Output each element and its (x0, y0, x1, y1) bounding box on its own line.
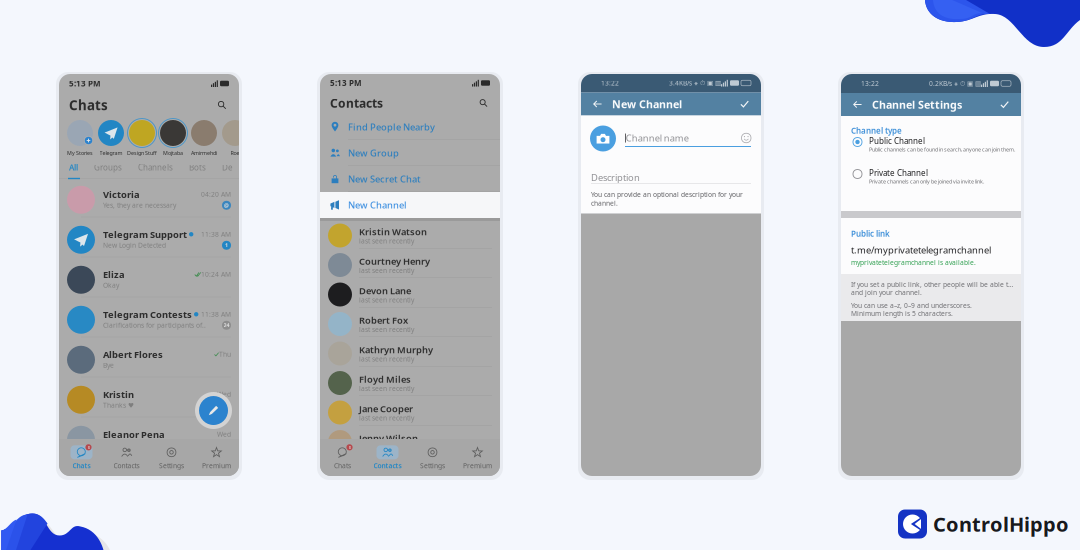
staticText: Description (591, 171, 640, 183)
staticText: Kristin (103, 388, 134, 400)
staticText: Find People Nearby (348, 121, 435, 133)
staticText: Telegram Support (103, 228, 187, 240)
staticText: 13:22 (861, 79, 879, 88)
button[interactable]: Albert Flores (59, 340, 239, 380)
button[interactable]: Eleanor Pena (59, 420, 239, 460)
staticText: Perfect (103, 441, 125, 450)
staticText: De (222, 162, 233, 173)
staticText: Contacts (373, 461, 401, 470)
button[interactable]: Victoria (59, 180, 239, 220)
staticText: Wed (217, 430, 231, 439)
button[interactable]: Search (215, 98, 229, 112)
staticText: Channel type (851, 125, 902, 136)
staticText: New Login Detected (103, 241, 166, 250)
button[interactable]: Find People Nearby (320, 114, 500, 140)
button[interactable]: Courtney Henry (320, 250, 500, 280)
staticText: Thu (219, 350, 231, 359)
staticText: My Stories (67, 149, 93, 157)
staticText: Yes, they are necessary (103, 201, 176, 210)
staticText: Floyd Miles (359, 373, 411, 385)
staticText: t.me/myprivatetelegramchannel (851, 244, 991, 256)
staticText: Albert Flores (103, 348, 163, 360)
staticText: 13:22 (601, 79, 619, 87)
button[interactable]: Back (589, 95, 606, 112)
staticText: myprivatetelegramchannel is available. (851, 258, 976, 267)
button[interactable]: Settings (149, 442, 194, 472)
staticText: ControlHippo (933, 511, 1069, 537)
button[interactable]: Kristin (59, 380, 239, 420)
staticText: 5:13 PM (330, 78, 362, 88)
staticText: Victoria (103, 188, 140, 200)
staticText: Private channels can only be joined via … (869, 178, 984, 185)
staticText: New Channel (348, 199, 407, 211)
staticText: Courtney Henry (359, 255, 430, 267)
button[interactable]: Jane Cooper (320, 398, 500, 427)
button[interactable]: Done (996, 96, 1013, 113)
staticText: Design Stuff (127, 149, 157, 157)
button[interactable]: New Channel (320, 192, 500, 218)
staticText: Private Channel (869, 168, 928, 178)
staticText: Public link (851, 228, 890, 239)
staticText: Public Channel (869, 136, 925, 146)
staticText: New Channel (612, 97, 682, 111)
staticText: Clarifications for participants of.. (103, 321, 206, 330)
button[interactable]: Contacts (104, 442, 149, 472)
staticText: Roe (230, 149, 239, 157)
staticText: All (69, 162, 78, 173)
button[interactable]: Back (849, 96, 866, 113)
staticText: 04:20 AM (201, 190, 231, 199)
button[interactable]: Settings (410, 442, 455, 472)
button[interactable]: Telegram Support (59, 220, 239, 260)
button[interactable]: New Group (320, 140, 500, 166)
staticText: last seen recently (359, 443, 414, 452)
staticText: Chats (72, 461, 90, 470)
staticText: Telegram Contests (103, 308, 192, 320)
staticText: 10:24 AM (201, 270, 231, 279)
staticText: last seen recently (359, 266, 414, 275)
button[interactable]: Eliza (59, 260, 239, 300)
button[interactable]: Kathryn Murphy (320, 339, 500, 368)
button[interactable]: Telegram Contests (59, 300, 239, 340)
button[interactable]: Done (736, 95, 753, 112)
button[interactable]: Robert Fox (320, 309, 500, 339)
staticText: last seen recently (359, 296, 414, 304)
button[interactable]: Search (477, 96, 490, 109)
button[interactable]: Floyd Miles (320, 368, 500, 398)
button[interactable]: Contacts (365, 442, 410, 472)
button[interactable]: Devon Lane (320, 280, 500, 309)
staticText: Channels (138, 162, 173, 173)
staticText: last seen recently (359, 355, 414, 363)
button[interactable]: New Secret Chat (320, 166, 500, 192)
staticText: Contacts (330, 95, 383, 111)
button[interactable]: 3 (320, 442, 365, 472)
staticText: You can provide an optional description … (591, 190, 743, 208)
staticText: 5:13 PM (69, 78, 101, 89)
staticText: Settings (159, 461, 184, 470)
button[interactable]: Jenny Wilson (320, 427, 500, 457)
staticText: New Group (348, 147, 399, 159)
staticText: last seen recently (359, 325, 414, 334)
button[interactable]: Kristin Watson (320, 221, 500, 250)
staticText: Bye (103, 361, 114, 370)
staticText: New Secret Chat (348, 173, 421, 185)
staticText: Premium (463, 461, 492, 470)
staticText: Premium (202, 461, 231, 470)
button[interactable]: Premium (455, 442, 500, 472)
staticText: Amirmehdi (191, 149, 217, 157)
staticText: ⚹ ⏱ ▣ ▥ (692, 79, 721, 87)
staticText: ⚹ ⏱ ▣ ▥ (952, 80, 981, 87)
button[interactable]: Premium (194, 442, 239, 472)
button[interactable]: 3 (59, 442, 104, 472)
button[interactable]: Public Channel (841, 136, 1021, 168)
button[interactable]: Private Channel (841, 168, 1021, 194)
staticText: 11:38 AM (201, 230, 231, 239)
staticText: 3 (348, 445, 350, 450)
staticText: Settings (420, 461, 445, 470)
staticText: Eliza (103, 268, 125, 280)
staticText: last seen recently (359, 414, 414, 422)
staticText: @ (224, 202, 229, 209)
staticText: and join your channel. (851, 288, 922, 297)
staticText: Wed (217, 390, 231, 399)
staticText: Channel Settings (872, 97, 962, 112)
staticText: Mojtaba (163, 149, 183, 157)
